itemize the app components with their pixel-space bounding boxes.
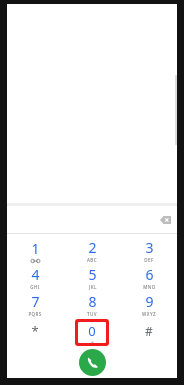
staticText: 6: [145, 265, 154, 284]
button[interactable]: Backspace: [157, 212, 173, 228]
staticText: 3: [145, 238, 154, 257]
staticText: MNO: [143, 284, 156, 290]
staticText: DEF: [144, 257, 154, 263]
staticText: +: [91, 340, 94, 343]
staticText: PQRS: [28, 311, 42, 317]
staticText: 8: [88, 292, 97, 311]
button[interactable]: 5: [63, 264, 120, 291]
staticText: #: [145, 323, 153, 339]
staticText: 7: [31, 292, 40, 311]
staticText: TUV: [87, 311, 97, 317]
staticText: *: [31, 322, 39, 340]
button[interactable]: 6: [120, 264, 177, 291]
button[interactable]: #: [120, 318, 177, 347]
staticText: WXYZ: [142, 311, 156, 317]
button[interactable]: *: [7, 318, 63, 347]
button[interactable]: 1: [7, 237, 63, 264]
staticText: JKL: [89, 284, 97, 290]
button[interactable]: 7: [7, 291, 63, 318]
staticText: 2: [88, 238, 97, 257]
button[interactable]: 0: [63, 318, 120, 347]
staticText: 0: [88, 322, 96, 340]
button[interactable]: 2: [63, 237, 120, 264]
button[interactable]: 4: [7, 264, 63, 291]
staticText: 9: [145, 292, 154, 311]
button[interactable]: 9: [120, 291, 177, 318]
button[interactable]: 8: [63, 291, 120, 318]
staticText: 5: [88, 265, 97, 284]
staticText: 1: [31, 239, 40, 258]
staticText: ABC: [87, 257, 97, 263]
staticText: GHI: [30, 284, 40, 290]
button[interactable]: Call: [79, 349, 106, 376]
button[interactable]: 3: [120, 237, 177, 264]
staticText: 4: [31, 265, 40, 284]
